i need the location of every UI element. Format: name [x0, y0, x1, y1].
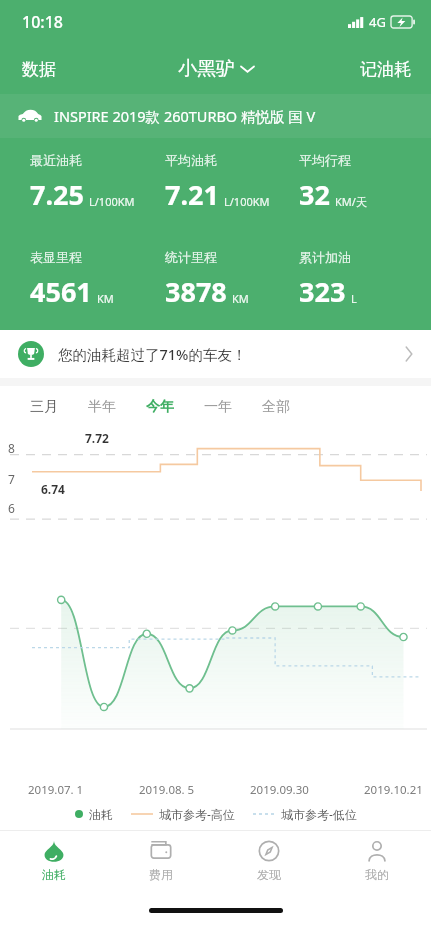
staticText: 表显里程	[30, 249, 82, 265]
staticText: 我的	[365, 867, 389, 882]
staticText: 三月	[30, 398, 58, 416]
staticText: 城市参考-低位	[281, 806, 357, 822]
staticText: KM	[232, 291, 249, 306]
staticText: 全部	[262, 398, 290, 416]
staticText: 7	[8, 471, 15, 487]
staticText: 您的油耗超过了71%的车友！	[58, 344, 247, 364]
staticText: 323	[299, 273, 346, 310]
staticText: KM	[97, 291, 114, 306]
button[interactable]: 我的	[323, 831, 431, 893]
staticText: 累计加油	[299, 249, 351, 265]
staticText: 记油耗	[360, 59, 411, 80]
staticText: 费用	[149, 867, 173, 882]
staticText: 数据	[22, 59, 56, 80]
staticText: 7.72	[85, 430, 109, 446]
staticText: 3878	[165, 273, 227, 310]
button[interactable]: 今年	[134, 390, 186, 424]
staticText: 油耗	[42, 867, 66, 882]
button[interactable]: 三月	[18, 390, 70, 424]
staticText: 32	[299, 176, 330, 213]
button[interactable]: 半年	[76, 390, 128, 424]
button[interactable]: 数据	[0, 51, 78, 88]
staticText: 统计里程	[165, 249, 217, 265]
staticText: 最近油耗	[30, 152, 82, 168]
staticText: 6	[8, 500, 15, 516]
staticText: 一年	[204, 398, 232, 416]
staticText: 4561	[30, 273, 92, 310]
staticText: 小黑驴	[178, 57, 235, 81]
staticText: 10:18	[22, 11, 63, 33]
staticText: 2019.07. 1	[28, 782, 84, 798]
staticText: L/100KM	[89, 194, 135, 209]
staticText: 2019.08. 5	[139, 782, 195, 798]
staticText: 油耗	[89, 807, 113, 822]
staticText: 城市参考-高位	[159, 806, 235, 822]
staticText: INSPIRE 2019款 260TURBO 精悦版 国 V	[54, 106, 316, 126]
staticText: 6.74	[41, 481, 65, 497]
button[interactable]: 发现	[215, 831, 323, 893]
staticText: KM/天	[335, 194, 367, 209]
staticText: 8	[8, 440, 15, 456]
staticText: 今年	[146, 398, 174, 416]
button[interactable]: 一年	[192, 390, 244, 424]
staticText: 2019.10.21	[364, 782, 423, 798]
button[interactable]: INSPIRE 2019款 260TURBO 精悦版 国 V	[0, 94, 431, 138]
button[interactable]: 油耗	[0, 831, 107, 893]
staticText: L	[351, 291, 357, 306]
button[interactable]: 全部	[250, 390, 302, 424]
button[interactable]: 记油耗	[340, 51, 431, 88]
staticText: 7.25	[30, 176, 84, 213]
staticText: L/100KM	[224, 194, 270, 209]
staticText: 4G	[369, 13, 386, 31]
button[interactable]: 您的油耗超过了71%的车友！	[0, 330, 431, 378]
staticText: 发现	[257, 867, 281, 882]
staticText: 平均油耗	[165, 152, 217, 168]
staticText: 平均行程	[299, 152, 351, 168]
staticText: 半年	[88, 398, 116, 416]
staticText: 2019.09.30	[250, 782, 309, 798]
staticText: 7.21	[165, 176, 219, 213]
button[interactable]: 小黑驴	[166, 51, 266, 87]
button[interactable]: 费用	[107, 831, 215, 893]
